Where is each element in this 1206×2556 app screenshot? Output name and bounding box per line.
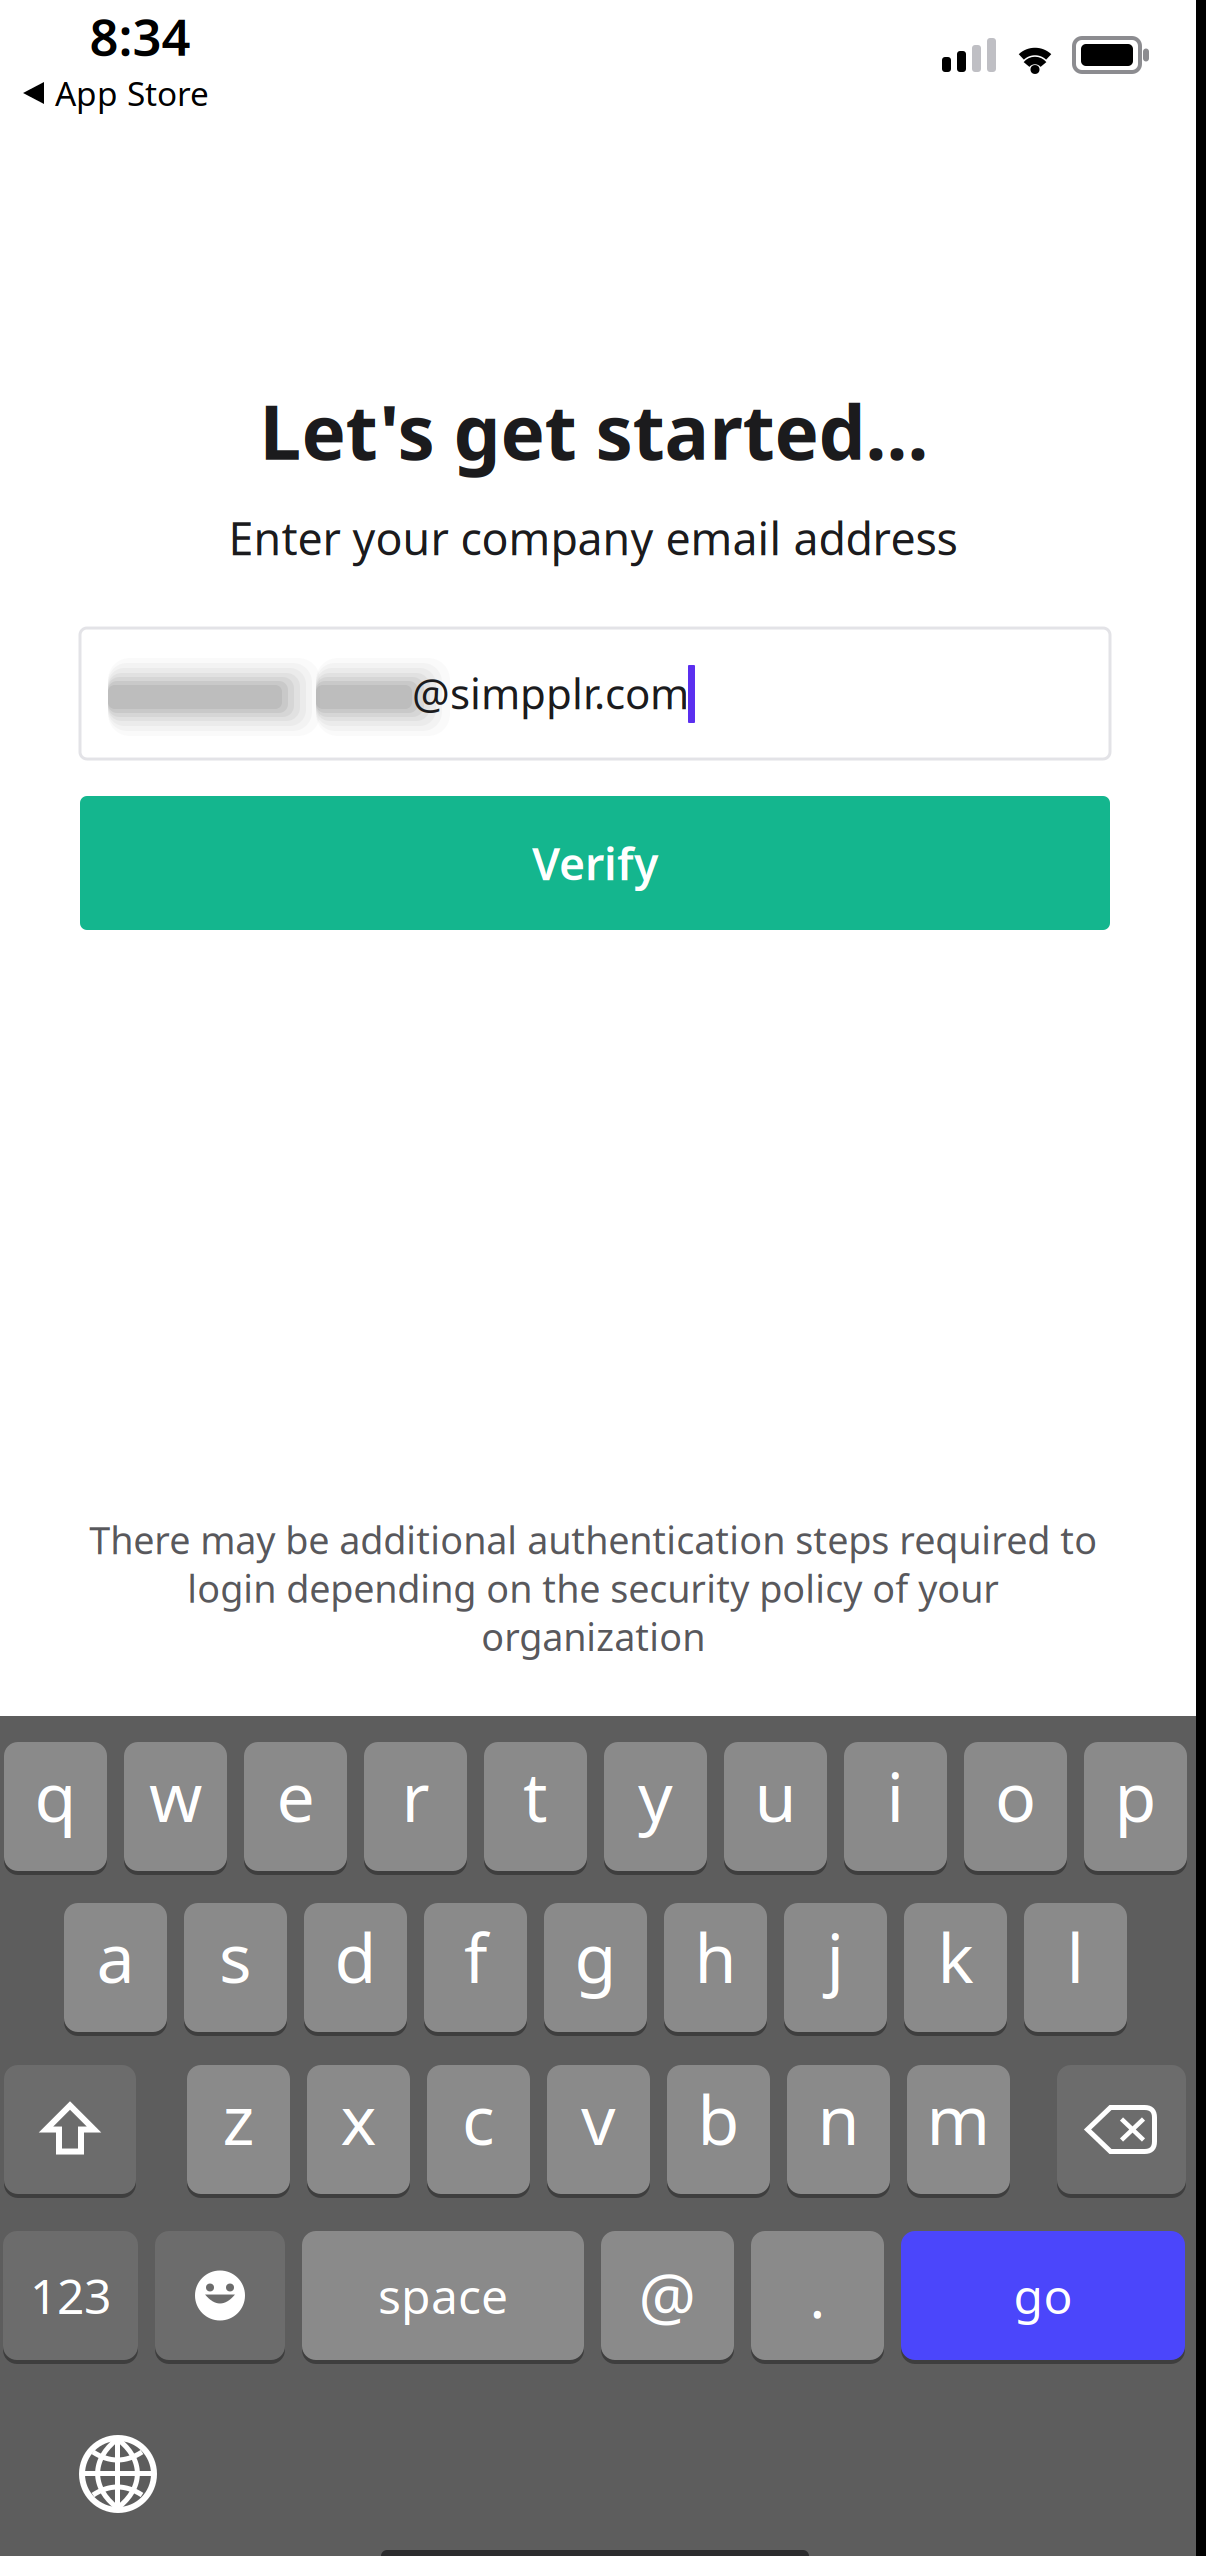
button[interactable]: App Store (0, 66, 227, 120)
button[interactable]: u (724, 1740, 827, 1873)
staticText: j (826, 1910, 844, 2003)
button[interactable]: k (904, 1901, 1007, 2034)
staticText: @simpplr.com (412, 664, 689, 722)
button[interactable] (4, 2063, 136, 2196)
staticText: Verify (532, 833, 658, 893)
button[interactable]: l (1024, 1901, 1127, 2034)
staticText: o (995, 1749, 1036, 1842)
staticText: h (694, 1910, 736, 2003)
staticText: There may be additional authentication s… (89, 1514, 1097, 1662)
button[interactable]: s (184, 1901, 287, 2034)
staticText: 123 (30, 2264, 111, 2327)
staticText: v (581, 2072, 616, 2165)
button[interactable] (155, 2229, 285, 2362)
staticText: b (697, 2072, 739, 2165)
button[interactable]: e (244, 1740, 347, 1873)
staticText: d (334, 1910, 376, 2003)
staticText: r (401, 1749, 429, 1842)
staticText: p (1114, 1749, 1156, 1842)
staticText: space (378, 2264, 508, 2327)
button[interactable]: g (544, 1901, 647, 2034)
staticText: s (219, 1910, 252, 2003)
staticText: y (638, 1749, 673, 1842)
button[interactable]: z (187, 2063, 290, 2196)
staticText: x (340, 2072, 376, 2165)
staticText: App Store (55, 71, 209, 115)
staticText: i (886, 1749, 904, 1842)
button[interactable]: r (364, 1740, 467, 1873)
button[interactable]: y (604, 1740, 707, 1873)
button[interactable] (1057, 2063, 1186, 2196)
staticText: . (809, 2256, 825, 2334)
staticText: k (937, 1910, 973, 2003)
staticText: q (34, 1749, 76, 1842)
button[interactable]: t (484, 1740, 587, 1873)
staticText: n (817, 2072, 859, 2165)
button[interactable]: Switch keyboard (58, 2419, 178, 2529)
button[interactable]: c (427, 2063, 530, 2196)
button[interactable]: space (302, 2229, 584, 2362)
staticText: c (462, 2072, 495, 2165)
button[interactable]: q (4, 1740, 107, 1873)
button[interactable]: Verify (80, 796, 1110, 930)
button[interactable]: d (304, 1901, 407, 2034)
button[interactable]: @ (601, 2229, 734, 2362)
button[interactable]: m (907, 2063, 1010, 2196)
staticText: e (276, 1749, 314, 1842)
button[interactable]: a (64, 1901, 167, 2034)
button[interactable]: j (784, 1901, 887, 2034)
staticText: @ (638, 2253, 696, 2338)
staticText: go (1013, 2264, 1072, 2327)
staticText: m (926, 2072, 990, 2165)
staticText: l (1066, 1910, 1084, 2003)
button[interactable]: n (787, 2063, 890, 2196)
staticText: Enter your company email address (228, 508, 957, 568)
button[interactable]: f (424, 1901, 527, 2034)
staticText: a (96, 1910, 134, 2003)
staticText: 8:34 (89, 2, 190, 70)
button[interactable]: b (667, 2063, 770, 2196)
button[interactable]: h (664, 1901, 767, 2034)
button[interactable]: i (844, 1740, 947, 1873)
staticText: w (149, 1749, 202, 1842)
button[interactable]: x (307, 2063, 410, 2196)
button[interactable]: go (901, 2229, 1185, 2362)
staticText: g (574, 1910, 616, 2003)
staticText: Let's get started... (259, 380, 928, 482)
button[interactable]: o (964, 1740, 1067, 1873)
staticText: f (464, 1910, 487, 2003)
button[interactable]: . (751, 2229, 884, 2362)
button[interactable]: p (1084, 1740, 1187, 1873)
staticText: u (754, 1749, 796, 1842)
button[interactable]: w (124, 1740, 227, 1873)
button[interactable]: v (547, 2063, 650, 2196)
button[interactable]: 123 (3, 2229, 138, 2362)
staticText: z (222, 2072, 254, 2165)
staticText: t (523, 1749, 548, 1842)
